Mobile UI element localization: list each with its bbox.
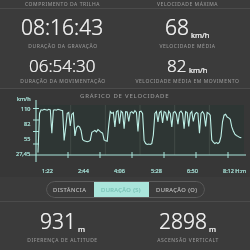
staticText: 82 bbox=[24, 120, 31, 127]
staticText: COMPRIMENTO DA TRILHA bbox=[25, 1, 101, 8]
staticText: DISTÂNCIA bbox=[53, 186, 87, 194]
staticText: ASCENSÃO VERTICALT bbox=[157, 237, 219, 244]
staticText: km/h bbox=[191, 30, 210, 40]
staticText: 68 bbox=[165, 13, 189, 42]
staticText: km/h bbox=[17, 95, 31, 102]
staticText: VELOCIDADE MÁXIMA bbox=[157, 1, 218, 8]
staticText: DIFERENÇA DE ALTITUDE bbox=[27, 237, 98, 244]
staticText: 931 bbox=[40, 207, 76, 236]
staticText: 82 bbox=[167, 54, 187, 77]
staticText: 55 bbox=[24, 135, 31, 142]
button[interactable]: DISTÂNCIA bbox=[46, 181, 94, 198]
staticText: m bbox=[209, 224, 217, 234]
staticText: 06:54:30 bbox=[29, 54, 96, 77]
staticText: 1:22 bbox=[42, 167, 53, 174]
staticText: DURAÇÃO (S) bbox=[101, 186, 142, 194]
button[interactable]: DURAÇÃO (O) bbox=[149, 181, 205, 198]
staticText: VELOCIDADE MÉDIA EM MOVIMENTO bbox=[135, 78, 240, 85]
staticText: DURAÇÃO DA MOVIMENTAÇÃO bbox=[20, 78, 106, 85]
staticText: 2898 bbox=[159, 207, 207, 236]
staticText: 27,45 bbox=[16, 150, 31, 157]
staticText: km/h bbox=[189, 65, 208, 75]
staticText: GRÁFICO DE VELOCIDADE bbox=[80, 92, 170, 100]
staticText: 08:16:43 bbox=[21, 13, 104, 42]
staticText: 8:12 H:m bbox=[223, 167, 247, 174]
staticText: 110 bbox=[21, 105, 31, 112]
staticText: DURAÇÃO (O) bbox=[156, 186, 198, 194]
staticText: m bbox=[78, 224, 86, 234]
staticText: 5:28 bbox=[151, 167, 162, 174]
staticText: DURAÇÃO DA GRAVAÇÃO bbox=[28, 43, 98, 50]
button[interactable]: DURAÇÃO (S) bbox=[94, 181, 149, 198]
staticText: VELOCIDADE MÉDIA bbox=[159, 43, 216, 50]
staticText: 6:50 bbox=[187, 167, 198, 174]
staticText: 2:44 bbox=[78, 167, 89, 174]
staticText: 4:06 bbox=[114, 167, 125, 174]
